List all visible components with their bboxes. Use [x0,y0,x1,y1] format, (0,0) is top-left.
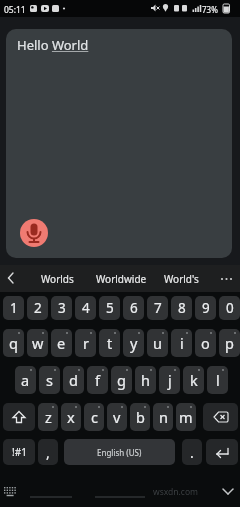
staticText: f [95,370,100,390]
button[interactable]: a [15,366,36,394]
button[interactable]: v [107,403,127,431]
staticText: Hello World [17,36,89,54]
staticText: 3 [58,299,66,317]
staticText: v [113,407,121,427]
staticText: g [117,370,126,390]
staticText: 5 [106,299,114,317]
staticText: u [153,333,162,353]
staticText: 4 [82,299,90,317]
staticText: 9 [202,299,210,317]
staticText: 6 [130,299,138,317]
button[interactable]: s [39,366,60,394]
button[interactable]: c [84,403,104,431]
button[interactable]: f [87,366,108,394]
button[interactable]: , [38,439,58,465]
button[interactable]: 6 [123,296,144,320]
button[interactable]: k [183,366,204,394]
staticText: Worlds [41,272,74,286]
staticText: s [46,370,53,390]
staticText: c [91,407,98,427]
button[interactable]: d [63,366,84,394]
button[interactable]: w [27,329,48,357]
staticText: , [46,443,50,462]
staticText: 8 [178,299,186,317]
staticText: 2 [34,299,42,317]
staticText: 05:11 [4,4,26,16]
staticText: Worldwide [96,272,147,286]
staticText: 0 [226,299,234,317]
button[interactable]: . [182,439,202,465]
button[interactable]: 5 [99,296,120,320]
staticText: English (US) [97,447,142,458]
staticText: b [136,407,145,427]
staticText: z [45,407,52,427]
button[interactable]: o [195,329,216,357]
button[interactable]: 0 [219,296,240,320]
button[interactable]: Hello World [6,29,232,258]
button[interactable] [3,403,35,431]
staticText: x [67,407,75,427]
button[interactable]: g [111,366,132,394]
button[interactable] [203,403,238,431]
button[interactable]: 8 [171,296,192,320]
button[interactable]: b [130,403,150,431]
button[interactable]: z [38,403,58,431]
button[interactable] [2,484,19,499]
button[interactable] [219,483,237,499]
button[interactable]: World's [155,265,207,292]
staticText: World's [164,272,199,286]
staticText: l [216,370,220,390]
button[interactable] [20,219,48,247]
button[interactable]: Worldwide [90,265,152,292]
button[interactable]: !#1 [3,439,35,465]
staticText: w [32,333,44,353]
button[interactable]: u [147,329,168,357]
button[interactable]: 4 [75,296,96,320]
staticText: . [190,443,194,462]
button[interactable]: e [51,329,72,357]
button[interactable]: p [219,329,240,357]
button[interactable]: n [153,403,173,431]
button[interactable]: 2 [27,296,48,320]
button[interactable]: 3 [51,296,72,320]
staticText: i [180,333,184,353]
staticText: 1 [10,299,18,317]
button[interactable]: t [99,329,120,357]
staticText: q [9,333,18,353]
button[interactable]: x [61,403,81,431]
staticText: d [69,370,78,390]
staticText: wsxdn.com [153,486,199,498]
button[interactable]: English (US) [64,439,175,465]
button[interactable]: 9 [195,296,216,320]
staticText: n [159,407,168,427]
staticText: m [179,407,193,427]
staticText: 73% [202,4,218,15]
button[interactable]: i [171,329,192,357]
staticText: 7 [154,299,162,317]
staticText: !#1 [12,445,27,459]
staticText: k [190,370,198,390]
button[interactable]: 1 [3,296,24,320]
staticText: p [225,333,234,353]
button[interactable]: r [75,329,96,357]
staticText: h [141,370,150,390]
button[interactable] [206,439,238,465]
staticText: j [168,370,172,390]
staticText: t [107,333,113,353]
button[interactable]: l [207,366,228,394]
staticText: o [201,333,210,353]
button[interactable]: m [176,403,196,431]
button[interactable]: y [123,329,144,357]
button[interactable]: 7 [147,296,168,320]
staticText: r [83,333,89,353]
button[interactable]: h [135,366,156,394]
button[interactable]: j [159,366,180,394]
button[interactable]: q [3,329,24,357]
staticText: y [130,333,138,353]
staticText: a [21,370,30,390]
staticText: e [57,333,66,353]
button[interactable]: Worlds [30,265,85,292]
